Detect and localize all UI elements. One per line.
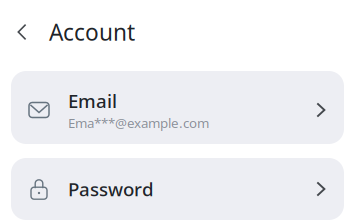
button[interactable]: Back [11,17,33,47]
staticText: Account [49,17,135,47]
button[interactable]: Password [11,158,344,220]
staticText: Password [68,177,154,201]
staticText: Ema***@example.com [68,114,209,132]
staticText: Email [68,88,117,113]
button[interactable]: Email [11,71,344,144]
